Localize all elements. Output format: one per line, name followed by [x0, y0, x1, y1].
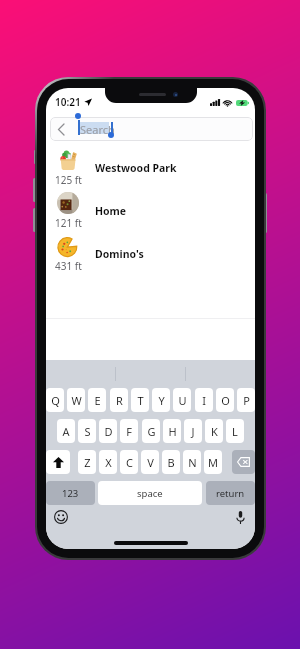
button[interactable]: R	[110, 388, 128, 412]
staticText: V	[147, 455, 154, 470]
staticText: B	[167, 455, 175, 470]
button[interactable]: 121 ft	[46, 190, 255, 233]
staticText: U	[178, 393, 187, 408]
button[interactable]: Dictate	[230, 507, 250, 527]
staticText: L	[232, 424, 238, 439]
button[interactable]: X	[99, 450, 117, 474]
staticText: H	[168, 424, 177, 439]
button[interactable]: N	[183, 450, 201, 474]
staticText: 123	[62, 487, 79, 500]
button[interactable]: W	[67, 388, 85, 412]
button[interactable]: return	[206, 481, 255, 505]
staticText: 10:21	[55, 95, 81, 109]
staticText: return	[216, 487, 245, 500]
button[interactable]: Z	[78, 450, 96, 474]
button[interactable]: G	[142, 419, 160, 443]
button[interactable]: F	[120, 419, 138, 443]
button[interactable]: B	[162, 450, 180, 474]
staticText: space	[137, 487, 163, 500]
staticText: G	[147, 424, 156, 439]
staticText: P	[243, 393, 250, 408]
button[interactable]: C	[120, 450, 138, 474]
staticText: X	[105, 455, 112, 470]
staticText: A	[62, 424, 70, 439]
button[interactable]: Y	[152, 388, 170, 412]
staticText: Z	[84, 455, 91, 470]
staticText: Westwood Park	[95, 161, 177, 175]
button[interactable]: H	[163, 419, 181, 443]
staticText: N	[188, 455, 197, 470]
staticText: S	[84, 424, 91, 439]
staticText: D	[104, 424, 113, 439]
staticText: O	[221, 393, 230, 408]
staticText: T	[137, 393, 144, 408]
button[interactable]: space	[98, 481, 202, 505]
button[interactable]: J	[184, 419, 202, 443]
button[interactable]: 431 ft	[46, 233, 255, 276]
staticText: F	[126, 424, 132, 439]
staticText: Home	[95, 204, 127, 218]
button[interactable]: P	[237, 388, 255, 412]
button[interactable]: Backspace	[232, 450, 255, 474]
staticText: Domino's	[95, 247, 144, 261]
staticText: Search	[80, 122, 115, 137]
staticText: Q	[51, 393, 60, 408]
button[interactable]: Q	[46, 388, 64, 412]
button[interactable]: T	[131, 388, 149, 412]
button[interactable]: 125 ft	[46, 147, 255, 190]
staticText: W	[71, 393, 82, 408]
button[interactable]: E	[88, 388, 106, 412]
button[interactable]: I	[195, 388, 213, 412]
button[interactable]: V	[141, 450, 159, 474]
button[interactable]: Shift	[46, 450, 70, 474]
button[interactable]: Back	[50, 117, 74, 141]
staticText: J	[191, 424, 195, 439]
button[interactable]: O	[216, 388, 234, 412]
button[interactable]: A	[57, 419, 75, 443]
staticText: 125 ft	[55, 173, 82, 187]
button[interactable]: Emoji keyboard	[51, 507, 71, 527]
staticText: C	[126, 455, 133, 470]
staticText: K	[211, 424, 218, 439]
button[interactable]: 123	[46, 481, 95, 505]
staticText: 121 ft	[55, 216, 82, 230]
button[interactable]: L	[226, 419, 244, 443]
staticText: R	[116, 393, 123, 408]
staticText: E	[94, 393, 101, 408]
staticText: M	[208, 455, 218, 470]
button[interactable]: D	[99, 419, 117, 443]
button[interactable]: U	[173, 388, 191, 412]
button[interactable]: K	[205, 419, 223, 443]
button[interactable]: S	[78, 419, 96, 443]
staticText: 431 ft	[55, 259, 82, 273]
staticText: I	[202, 393, 206, 408]
staticText: Y	[158, 393, 165, 408]
button[interactable]: M	[204, 450, 222, 474]
